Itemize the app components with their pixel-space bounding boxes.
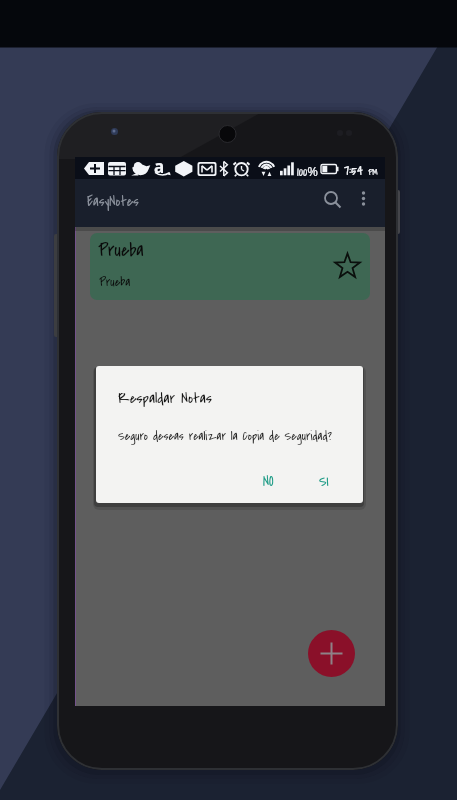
button[interactable]: NO xyxy=(253,464,293,492)
staticText: Prueba xyxy=(98,238,144,264)
staticText: 100% xyxy=(297,162,319,181)
staticText: EasyNotes xyxy=(87,192,139,212)
staticText: NO xyxy=(263,472,274,491)
staticText: 7:54 xyxy=(344,161,363,181)
staticText: SI xyxy=(319,472,329,491)
button[interactable] xyxy=(319,186,344,211)
button[interactable]: SI xyxy=(309,464,349,492)
staticText: Seguro deseas realizar la Copia de Segur… xyxy=(118,428,332,445)
staticText: Prueba xyxy=(99,273,131,291)
button[interactable] xyxy=(353,186,374,211)
staticText: a xyxy=(154,155,165,177)
staticText: PM xyxy=(368,166,378,178)
staticText: Respaldar Notas xyxy=(118,388,213,409)
button[interactable]: Prueba xyxy=(90,233,370,300)
button[interactable] xyxy=(308,630,355,677)
